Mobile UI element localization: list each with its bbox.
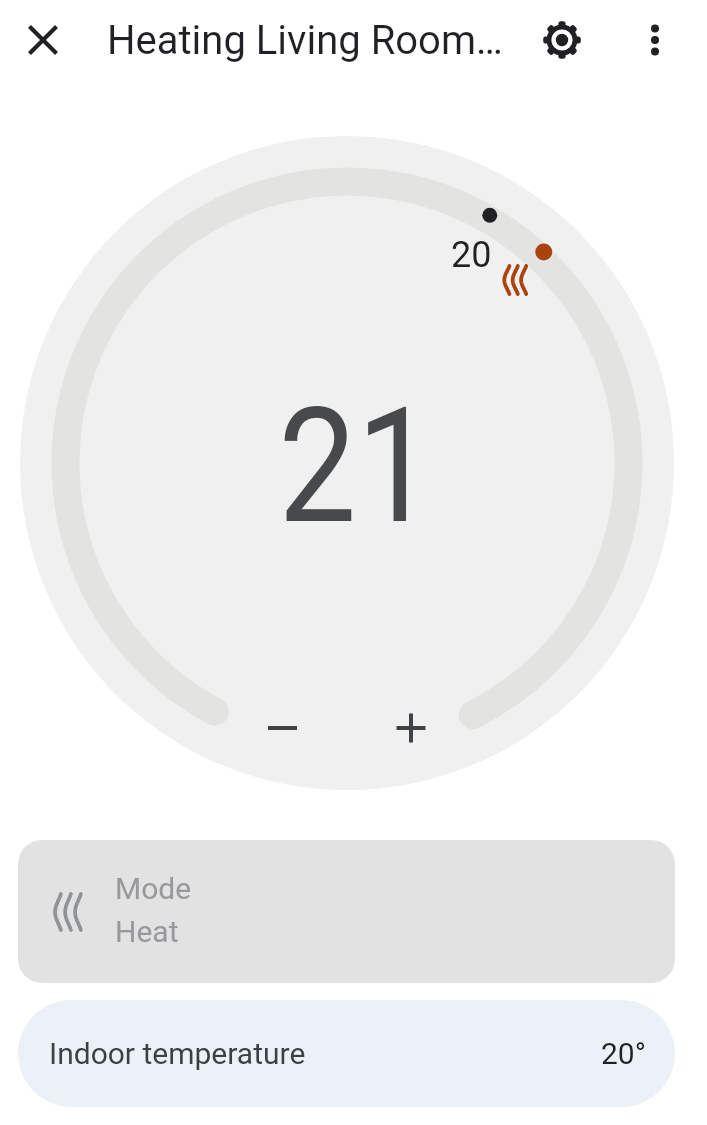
button[interactable] <box>19 16 67 64</box>
staticText: Heating Living Room… <box>107 17 503 64</box>
button[interactable] <box>244 690 320 766</box>
button[interactable] <box>20 136 674 790</box>
staticText: Mode <box>115 871 192 906</box>
staticText: Indoor temperature <box>49 1036 306 1071</box>
button[interactable]: Mode <box>18 840 675 983</box>
staticText: 20 <box>451 234 492 276</box>
button[interactable]: Indoor temperature <box>18 1000 675 1107</box>
button[interactable] <box>631 16 679 64</box>
button[interactable] <box>373 690 449 766</box>
staticText: 21 <box>278 373 435 559</box>
staticText: 20° <box>601 1036 646 1071</box>
button[interactable] <box>538 16 586 64</box>
staticText: Heat <box>115 914 179 949</box>
